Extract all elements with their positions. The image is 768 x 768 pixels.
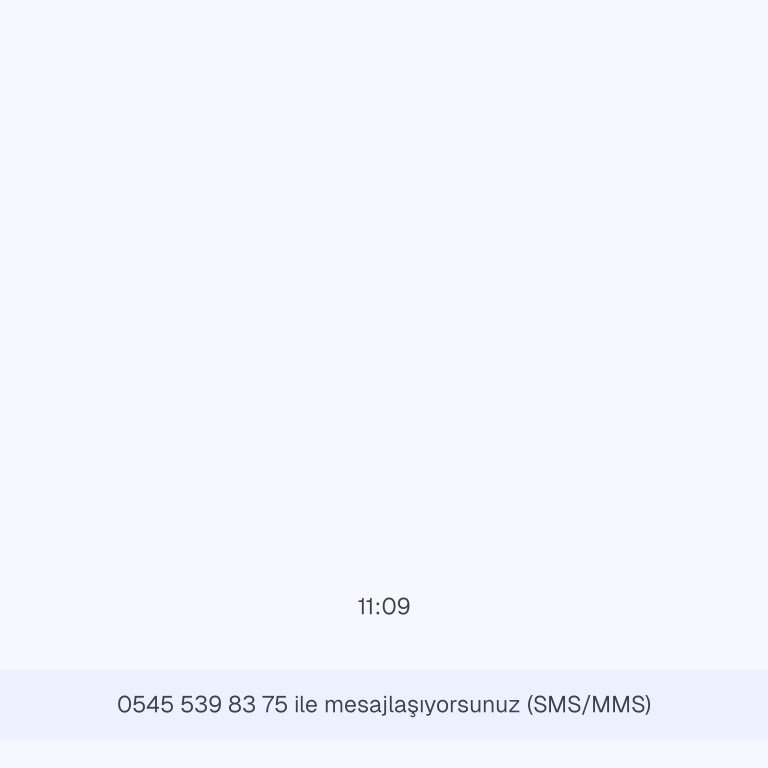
staticText: 0545 539 83 75 ile mesajlaşıyorsunuz (SM…	[117, 689, 651, 719]
staticText: 11:09	[357, 591, 410, 621]
